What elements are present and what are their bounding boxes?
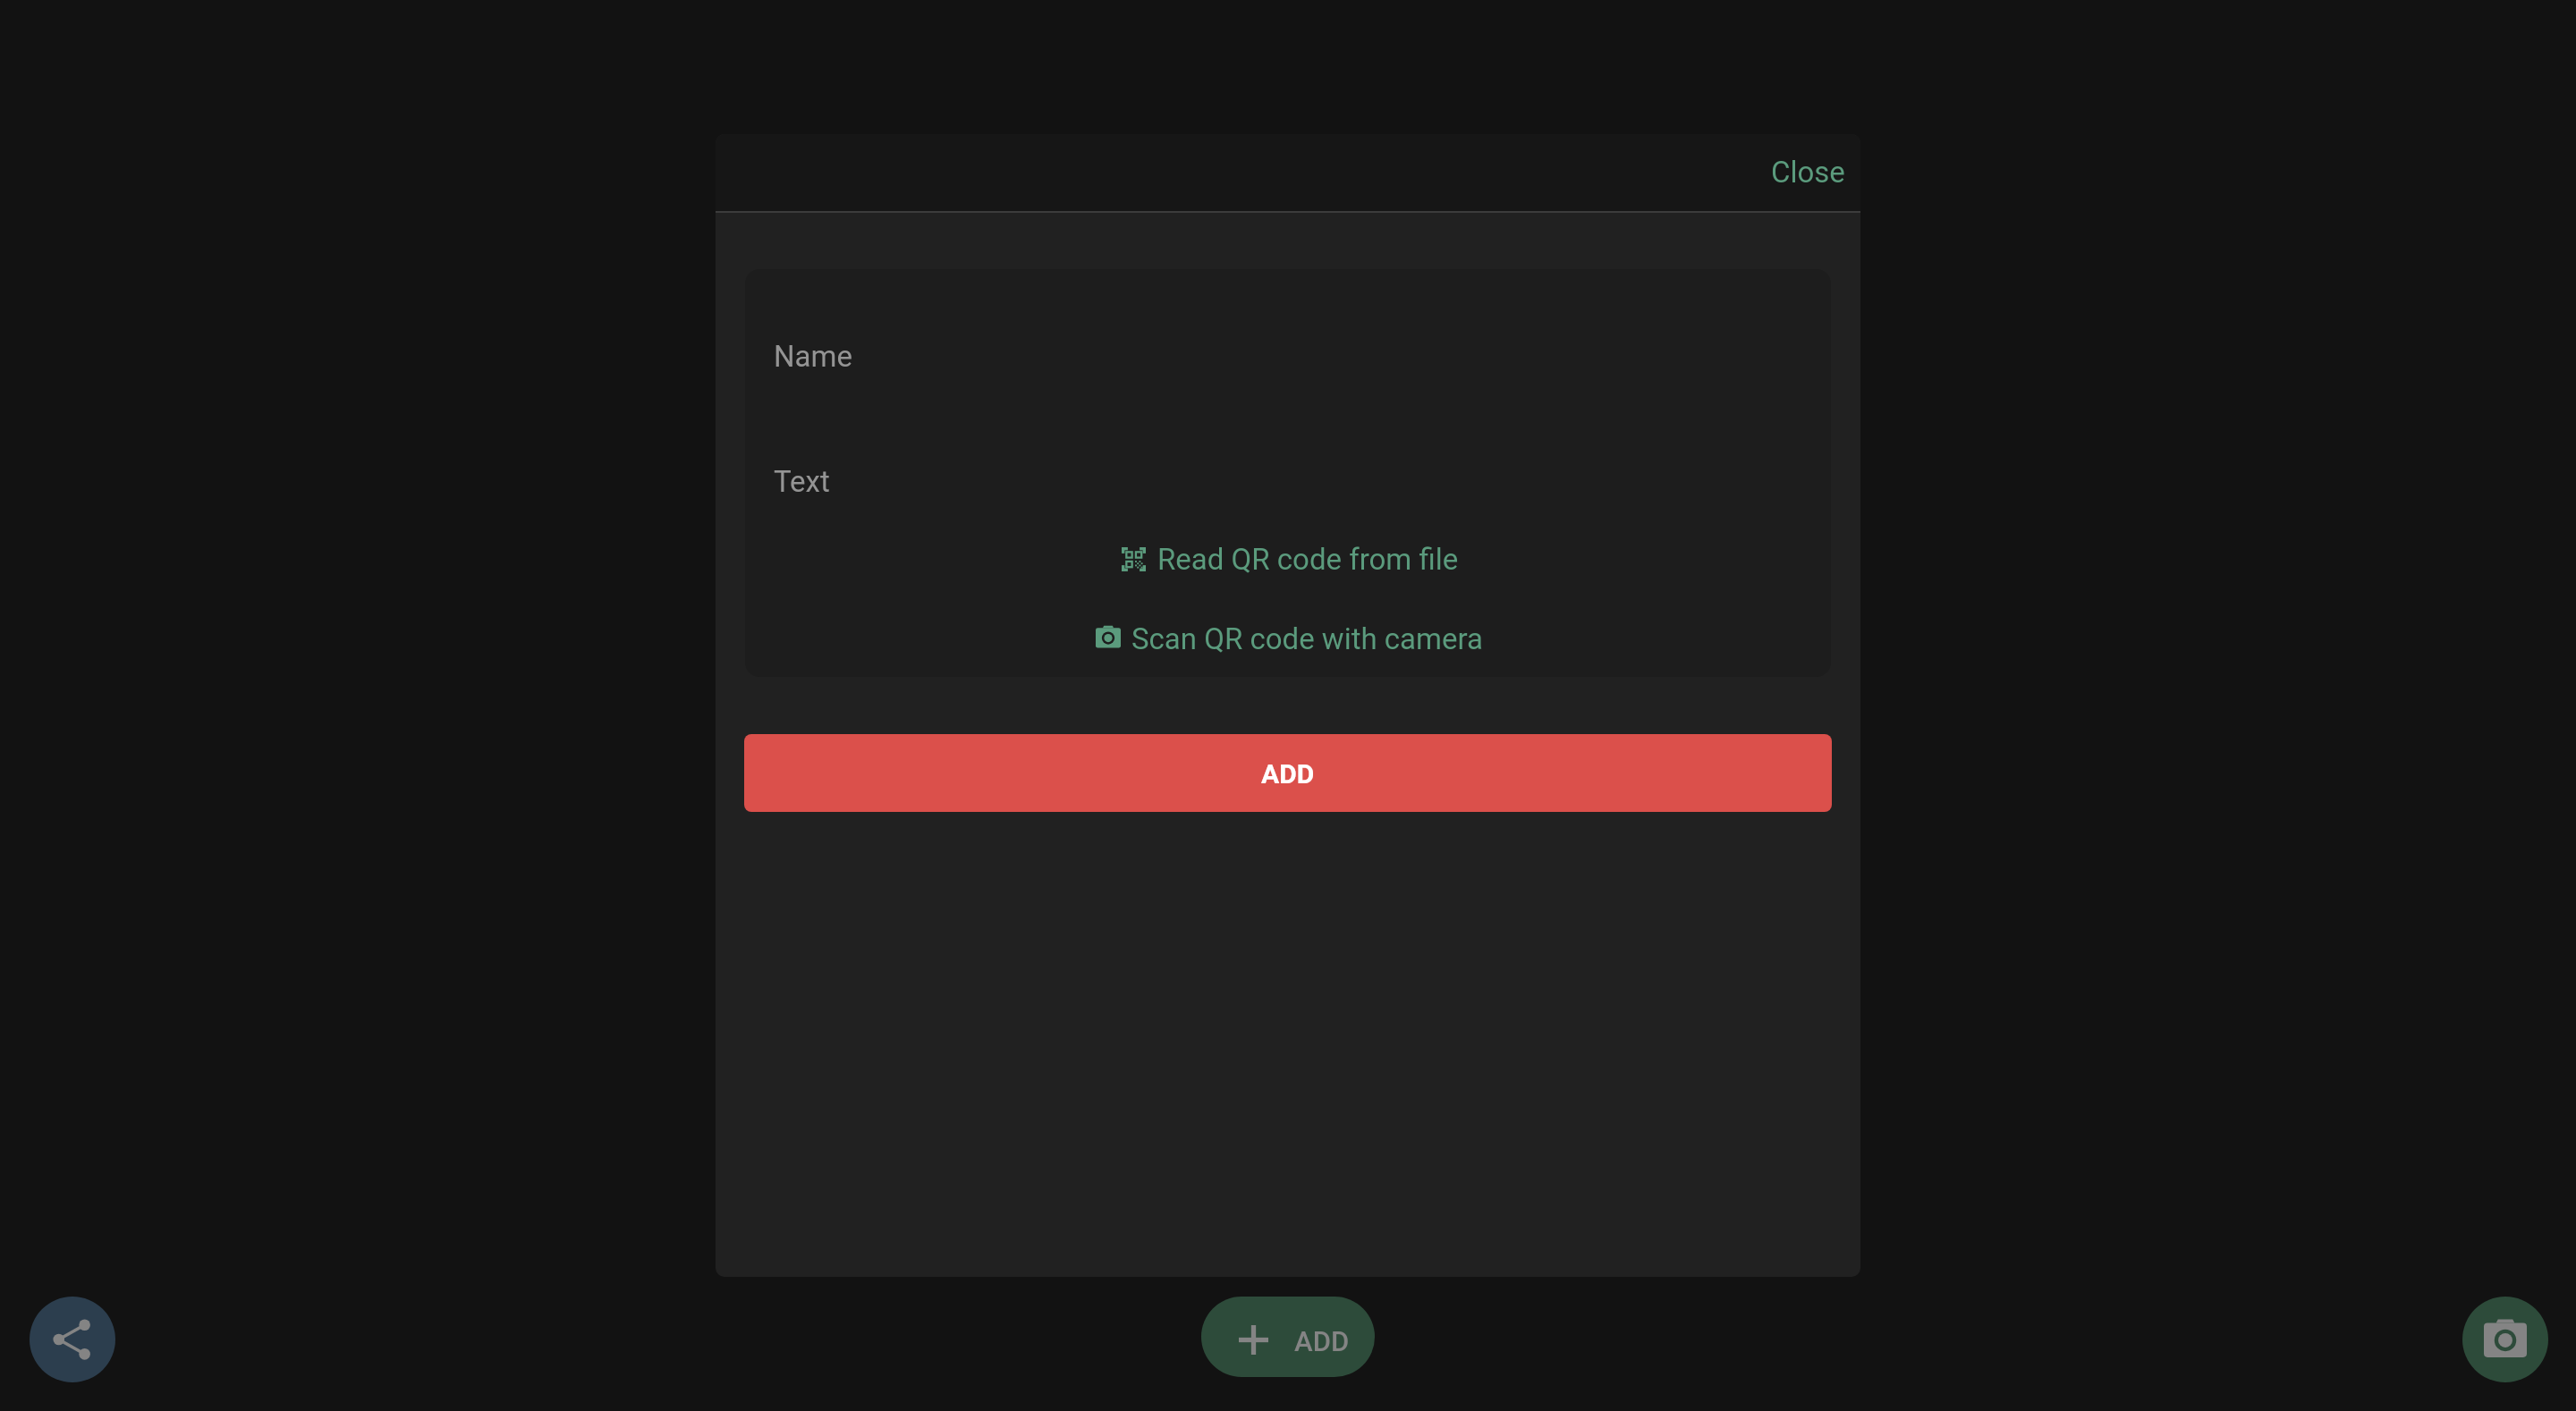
staticText: Read QR code from file (1157, 542, 1459, 577)
staticText: ADD (1261, 758, 1315, 790)
staticText: Close (1771, 155, 1845, 190)
button[interactable]: Scan QR code with camera (1087, 613, 1492, 664)
button[interactable]: Scan with camera (2462, 1297, 2548, 1382)
button[interactable]: ADD (744, 734, 1832, 812)
staticText: Text (774, 464, 830, 499)
button[interactable]: ADD (1201, 1297, 1375, 1377)
button[interactable]: Close (1756, 143, 1860, 201)
staticText: Scan QR code with camera (1131, 621, 1483, 656)
staticText: ADD (1294, 1325, 1350, 1357)
button[interactable]: Read QR code from file (1113, 534, 1468, 585)
button[interactable]: Share (30, 1297, 115, 1382)
staticText: Name (774, 339, 852, 374)
